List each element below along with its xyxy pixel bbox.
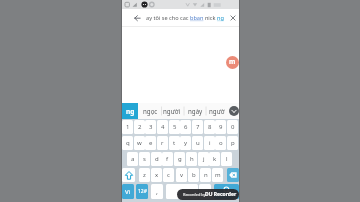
button[interactable]: o	[215, 136, 226, 150]
button[interactable]: t	[169, 136, 180, 150]
button[interactable]: p	[227, 136, 238, 150]
button[interactable]: l	[221, 152, 232, 166]
button[interactable]: ng	[122, 103, 138, 119]
button[interactable]: m	[226, 56, 239, 69]
button[interactable]: ngày	[184, 103, 206, 119]
staticText: i	[209, 139, 211, 147]
staticText: v	[180, 171, 184, 179]
button[interactable]: f	[162, 152, 173, 166]
button[interactable]: Vi	[122, 184, 134, 199]
staticText: h	[190, 155, 194, 163]
staticText: Vi	[125, 188, 131, 196]
button[interactable]: i	[204, 136, 215, 150]
staticText: c	[167, 171, 170, 179]
button[interactable]: z	[139, 168, 150, 182]
staticText: 6	[184, 123, 188, 131]
staticText: ay tôi se cho cac bban nick ng	[146, 14, 224, 22]
button[interactable]: 6	[180, 120, 191, 134]
button[interactable]	[229, 106, 239, 116]
staticText: b	[192, 171, 196, 179]
button[interactable]: ngườ	[206, 103, 228, 119]
staticText: 5	[173, 123, 177, 131]
button[interactable]: .	[199, 184, 211, 199]
button[interactable]	[122, 9, 239, 26]
button[interactable]: n	[200, 168, 211, 182]
button[interactable]: x	[151, 168, 162, 182]
button[interactable]: người	[161, 103, 183, 119]
button[interactable]: r	[157, 136, 168, 150]
button[interactable]	[166, 184, 198, 199]
staticText: n	[204, 171, 208, 179]
staticText: ngày	[188, 107, 203, 115]
staticText: ngườ	[209, 107, 225, 115]
button[interactable]: e	[145, 136, 156, 150]
staticText: u	[196, 139, 200, 147]
staticText: q	[126, 139, 130, 147]
button[interactable]: 0	[227, 120, 238, 134]
button[interactable]: v	[176, 168, 187, 182]
staticText: 4	[161, 123, 165, 131]
button[interactable]	[230, 15, 236, 21]
button[interactable]: ngọc	[139, 103, 161, 119]
staticText: m	[215, 171, 221, 179]
staticText: y	[184, 139, 188, 147]
button[interactable]: u	[192, 136, 203, 150]
button[interactable]: h	[186, 152, 197, 166]
button[interactable]: b	[188, 168, 199, 182]
button[interactable]: 3	[145, 120, 156, 134]
staticText: Recorded by	[183, 192, 206, 197]
staticText: o	[219, 139, 223, 147]
button[interactable]: w	[134, 136, 145, 150]
button[interactable]	[134, 15, 141, 22]
staticText: DU Recorder	[205, 191, 237, 198]
button[interactable]	[122, 168, 135, 182]
staticText: j	[203, 155, 205, 163]
button[interactable]: 5	[169, 120, 180, 134]
staticText: p	[231, 139, 235, 147]
button[interactable]	[214, 184, 239, 199]
staticText: k	[213, 155, 217, 163]
staticText: r	[161, 139, 164, 147]
staticText: 3	[149, 123, 153, 131]
button[interactable]: a	[127, 152, 138, 166]
button[interactable]: j	[198, 152, 209, 166]
button[interactable]: g	[174, 152, 185, 166]
button[interactable]: 12#	[136, 184, 148, 199]
staticText: w	[137, 139, 142, 147]
button[interactable]: c	[163, 168, 174, 182]
staticText: ,	[156, 187, 158, 197]
staticText: 2	[138, 123, 142, 131]
button[interactable]: 7	[192, 120, 203, 134]
staticText: ngọc	[143, 107, 158, 115]
button[interactable]: m	[212, 168, 223, 182]
staticText: 1	[126, 123, 130, 131]
staticText: s	[143, 155, 146, 163]
button[interactable]: 8	[204, 120, 215, 134]
staticText: g	[178, 155, 182, 163]
staticText: e	[149, 139, 153, 147]
button[interactable]: k	[209, 152, 220, 166]
button[interactable]: 2	[134, 120, 145, 134]
staticText: 9	[219, 123, 223, 131]
staticText: a	[131, 155, 135, 163]
staticText: x	[155, 171, 159, 179]
button[interactable]: ,	[151, 184, 163, 199]
staticText: f	[166, 155, 169, 163]
staticText: 12#	[138, 188, 147, 195]
button[interactable]: d	[151, 152, 162, 166]
button[interactable]: 1	[122, 120, 133, 134]
button[interactable]: s	[139, 152, 150, 166]
button[interactable]: 4	[157, 120, 168, 134]
staticText: l	[226, 155, 228, 163]
staticText: người	[163, 107, 181, 115]
staticText: 7	[196, 123, 200, 131]
button[interactable]	[227, 168, 239, 182]
staticText: ng	[126, 107, 135, 116]
staticText: m	[229, 57, 236, 66]
staticText: z	[143, 171, 146, 179]
staticText: t	[173, 139, 176, 147]
button[interactable]: y	[180, 136, 191, 150]
button[interactable]: 9	[215, 120, 226, 134]
button[interactable]: q	[122, 136, 133, 150]
staticText: 0	[231, 123, 235, 131]
